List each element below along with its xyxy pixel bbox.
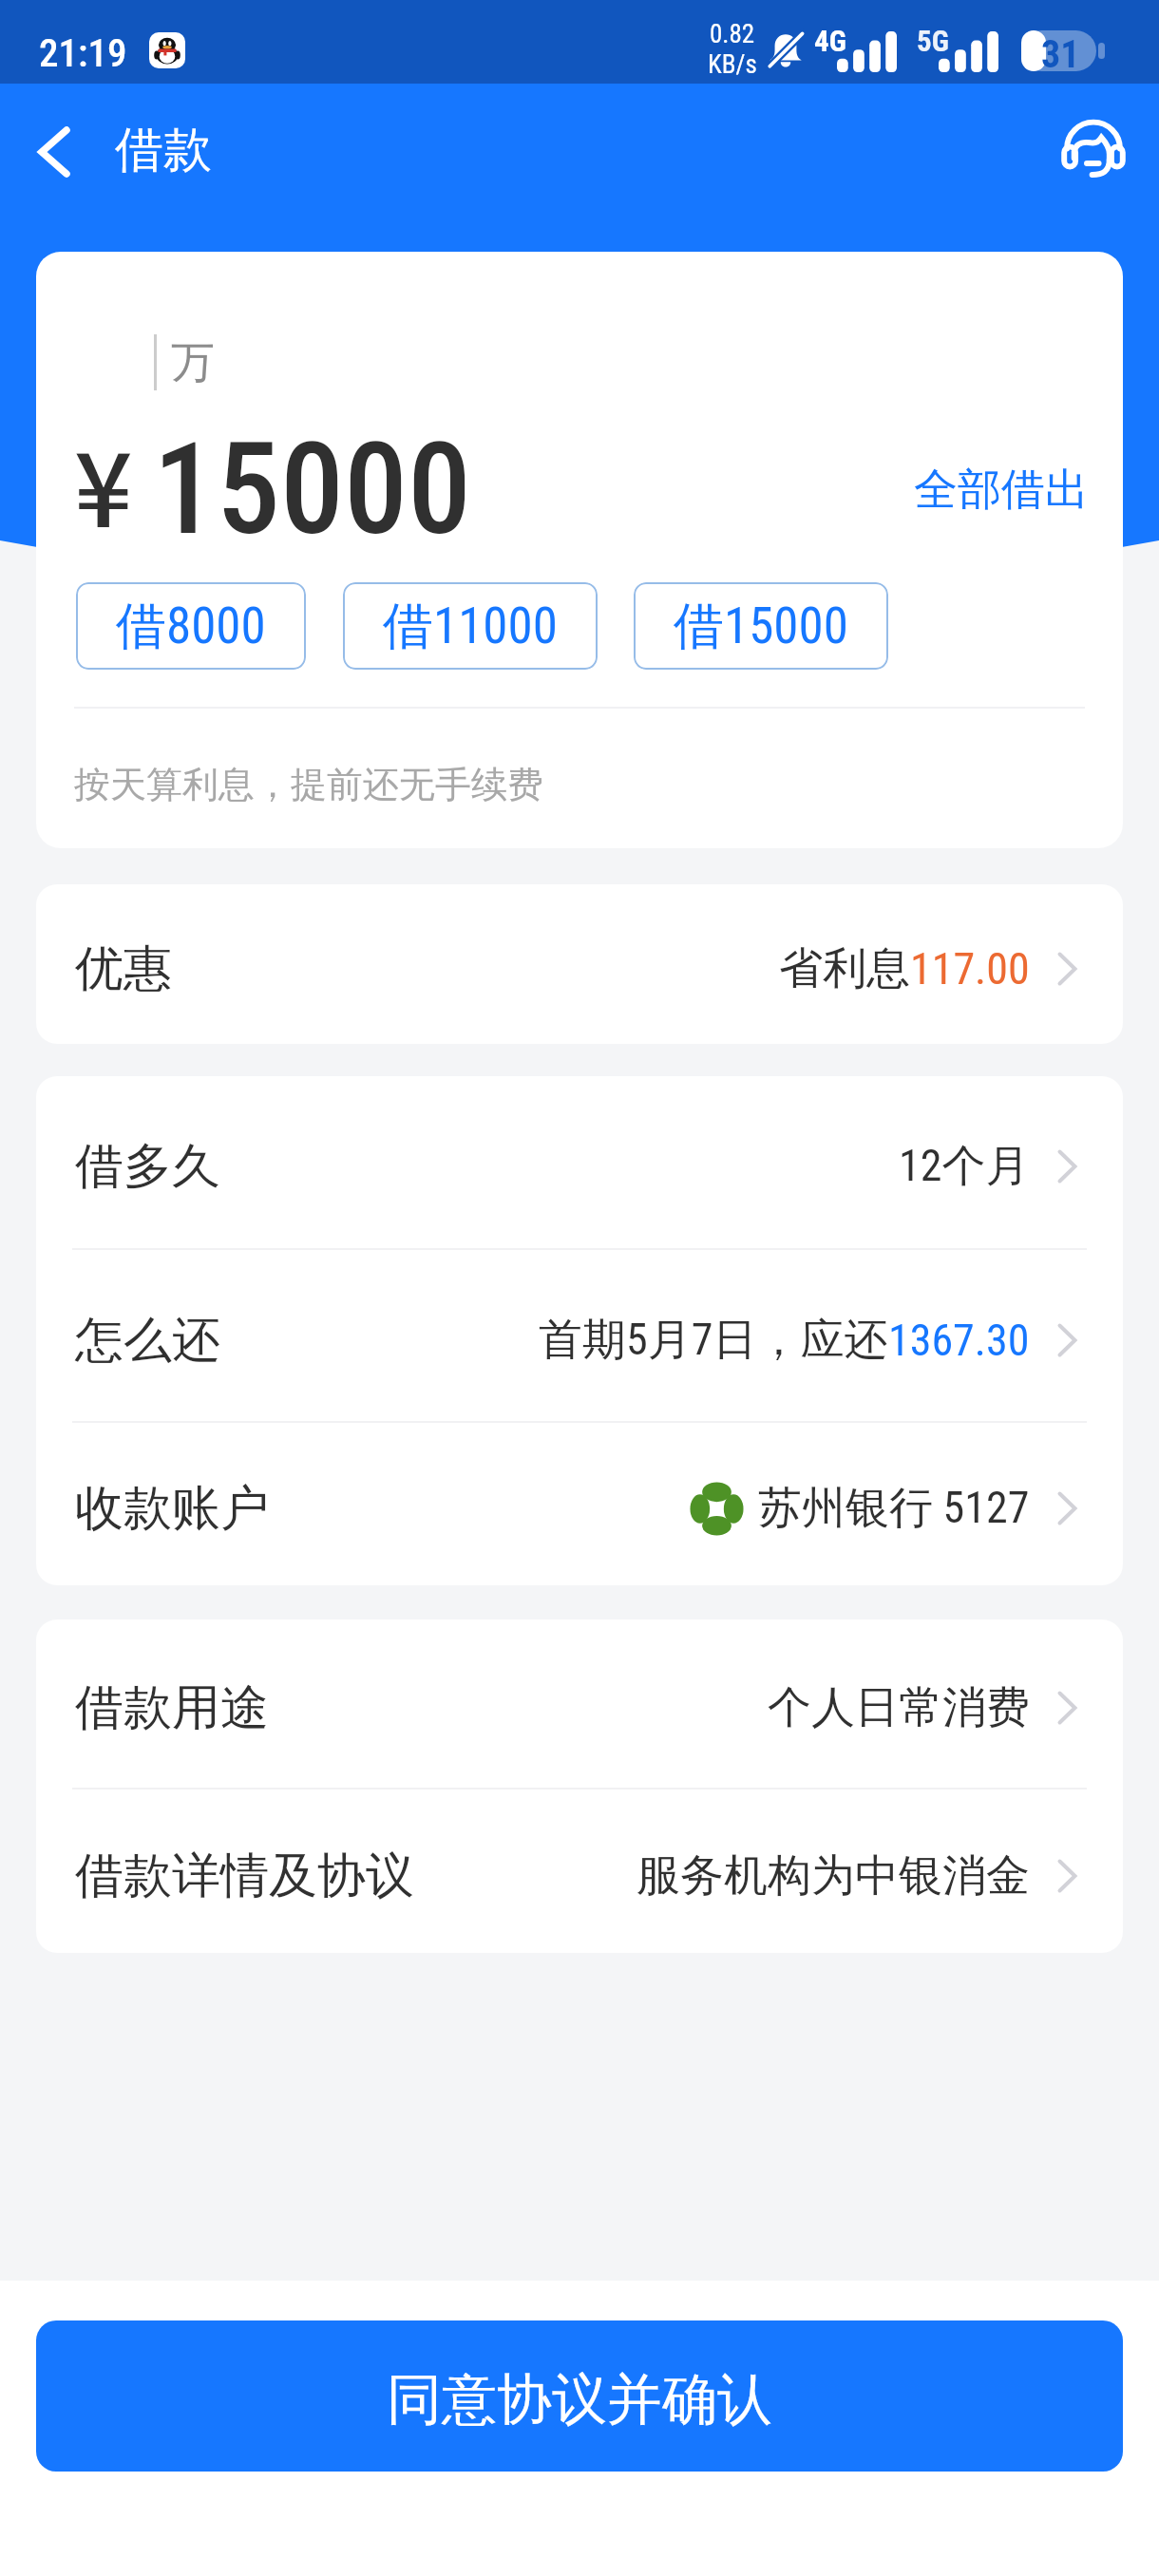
staticText: ¥ xyxy=(74,408,133,557)
button[interactable]: 全部借出 xyxy=(914,453,1089,527)
staticText: 21:19 xyxy=(39,30,127,76)
staticText: 服务机构为中银消金 xyxy=(636,1848,1030,1904)
staticText: 借11000 xyxy=(383,595,558,658)
staticText: 收款账户 xyxy=(75,1478,269,1539)
staticText: 借8000 xyxy=(116,595,266,658)
button[interactable]: Customer service xyxy=(1051,107,1136,193)
button[interactable]: 借15000 xyxy=(634,582,888,670)
staticText: 优惠 xyxy=(75,938,172,999)
button[interactable]: 借8000 xyxy=(76,582,306,670)
button[interactable]: 收款账户 xyxy=(36,1423,1123,1585)
staticText: 苏州银行 5127 xyxy=(758,1481,1030,1536)
button[interactable]: 优惠 xyxy=(36,884,1123,1044)
staticText: 4G xyxy=(814,24,846,58)
staticText: 12个月 xyxy=(899,1139,1030,1194)
staticText: 0.82 xyxy=(710,19,755,49)
staticText: 借款用途 xyxy=(75,1677,269,1738)
button[interactable]: 借款用途 xyxy=(36,1619,1123,1788)
staticText: 首期5月7日，应还 xyxy=(539,1313,888,1368)
button[interactable]: 借款详情及协议 xyxy=(36,1790,1123,1953)
button[interactable]: 同意协议并确认 xyxy=(36,2320,1123,2472)
staticText: 借款详情及协议 xyxy=(75,1846,414,1906)
staticText: 117.00 xyxy=(910,943,1030,994)
staticText: 借多久 xyxy=(75,1136,220,1197)
staticText: 31 xyxy=(1041,32,1080,73)
staticText: 省利息 xyxy=(779,941,910,996)
staticText: 按天算利息，提前还无手续费 xyxy=(74,762,543,807)
staticText: 怎么还 xyxy=(75,1310,220,1371)
staticText: 5G xyxy=(917,24,949,58)
button[interactable]: Back xyxy=(13,111,95,193)
staticText: 15000 xyxy=(153,415,471,564)
staticText: KB/s xyxy=(708,49,757,80)
button[interactable]: 怎么还 xyxy=(36,1250,1123,1421)
button[interactable]: 借多久 xyxy=(36,1076,1123,1248)
staticText: 全部借出 xyxy=(914,463,1089,518)
staticText: 万 xyxy=(171,335,215,390)
staticText: 借款 xyxy=(115,120,212,180)
staticText: 1367.30 xyxy=(888,1315,1030,1366)
staticText: 借15000 xyxy=(674,595,848,658)
staticText: 同意协议并确认 xyxy=(387,2365,772,2434)
button[interactable]: 借11000 xyxy=(343,582,598,670)
staticText: 个人日常消费 xyxy=(768,1680,1030,1735)
